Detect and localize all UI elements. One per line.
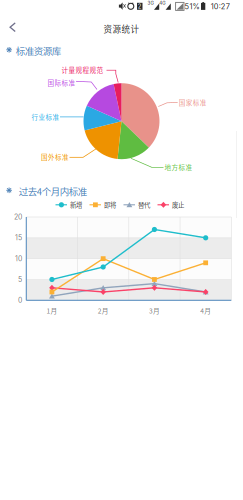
staticText: 替代 <box>138 200 150 209</box>
staticText: 10:27 <box>211 2 230 11</box>
staticText: 20 <box>14 213 22 221</box>
button[interactable]: 返回 <box>0 15 28 39</box>
staticText: 国家标准 <box>179 98 207 107</box>
staticText: 15 <box>15 234 22 242</box>
staticText: 1月 <box>46 306 57 315</box>
staticText: 地方标准 <box>164 162 192 172</box>
staticText: 10 <box>15 254 22 263</box>
staticText: 4月 <box>200 306 211 315</box>
staticText: 2月 <box>98 306 109 315</box>
staticText: 资源统计 <box>103 23 139 35</box>
staticText: 4G <box>159 0 165 6</box>
staticText: 2 <box>138 3 142 10</box>
staticText: 过去4个月内标准 <box>19 184 87 198</box>
staticText: 3G <box>148 0 154 6</box>
staticText: 5 <box>18 275 22 284</box>
staticText: 废止 <box>172 200 184 209</box>
staticText: 计量规程规范 <box>62 65 104 75</box>
staticText: 国外标准 <box>41 152 69 162</box>
staticText: 标准资源库 <box>16 44 61 57</box>
staticText: 0 <box>18 296 22 304</box>
staticText: 新增 <box>70 200 82 209</box>
staticText: 即将 <box>104 200 116 209</box>
staticText: 国际标准 <box>47 78 75 87</box>
staticText: 行业标准 <box>31 112 59 122</box>
staticText: 51% <box>184 2 199 11</box>
staticText: 3月 <box>149 306 160 315</box>
